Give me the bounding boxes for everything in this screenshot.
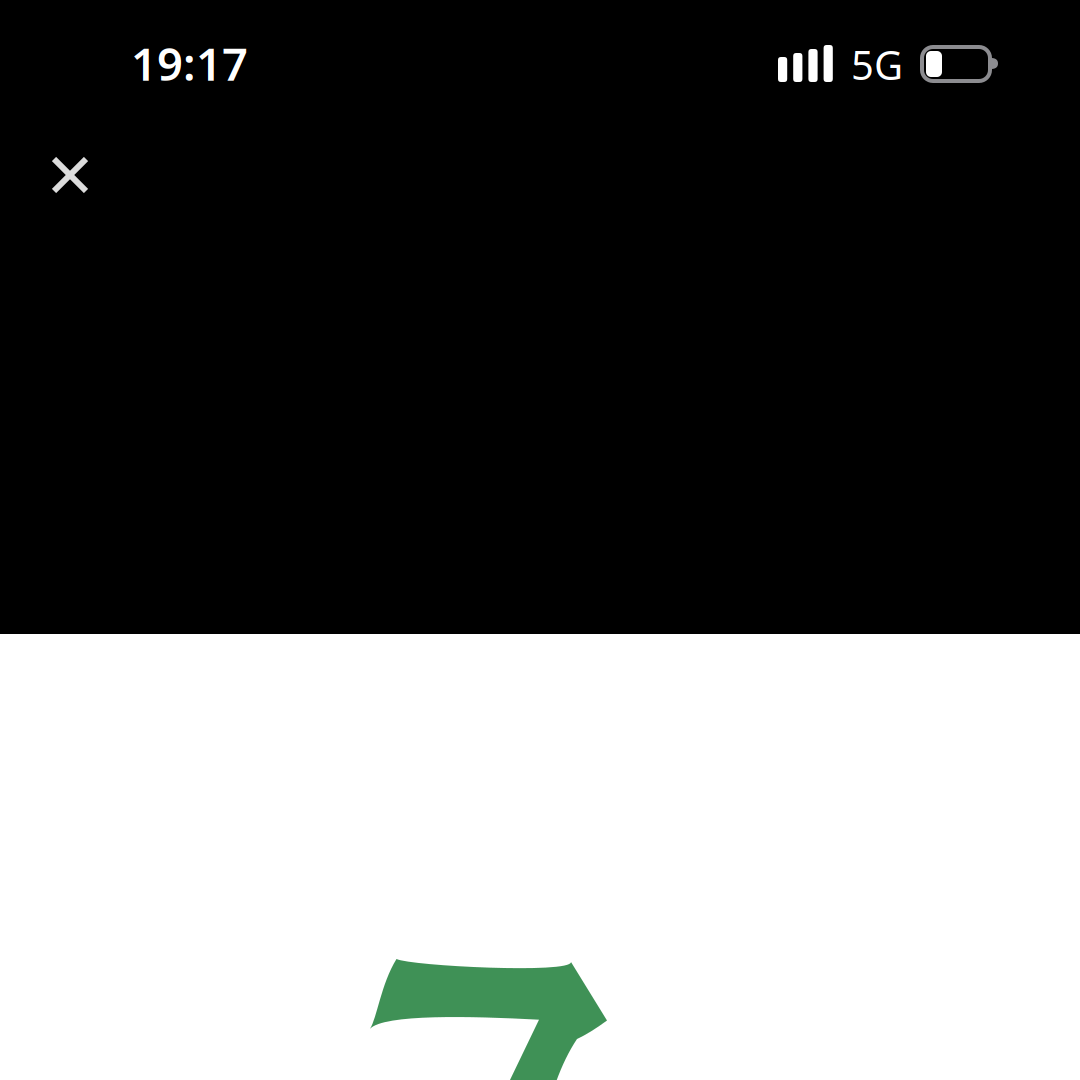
staticText: 19:17 <box>131 33 248 93</box>
button[interactable]: Close <box>25 130 115 220</box>
staticText: 5G <box>851 38 903 91</box>
